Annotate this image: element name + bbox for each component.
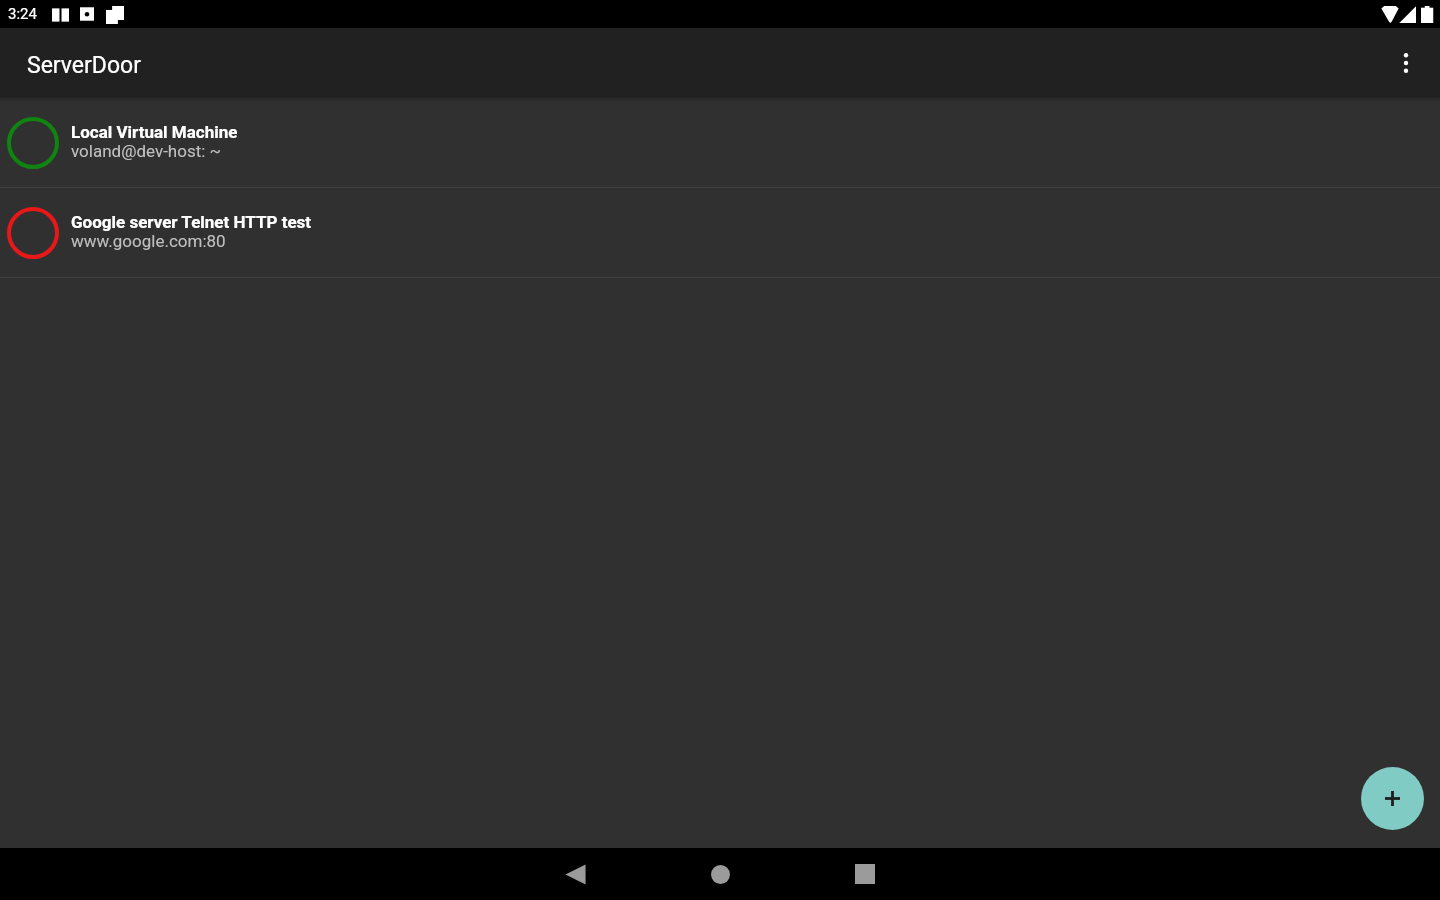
button[interactable]: Home [688, 848, 752, 900]
button[interactable]: Recent apps [833, 848, 897, 900]
staticText: Local Virtual Machine [71, 122, 238, 142]
staticText: 3:24 [8, 5, 37, 23]
staticText: Google server Telnet HTTP test [71, 212, 312, 232]
staticText: www.google.com:80 [71, 231, 226, 251]
staticText: ServerDoor [27, 52, 141, 79]
button[interactable]: More options [1382, 38, 1430, 86]
button[interactable]: Local Virtual Machine [0, 97, 1440, 188]
staticText: voland@dev-host: ~ [71, 141, 222, 161]
button[interactable]: Add server [1361, 767, 1424, 830]
button[interactable]: Back [543, 848, 607, 900]
button[interactable]: Google server Telnet HTTP test [0, 188, 1440, 278]
